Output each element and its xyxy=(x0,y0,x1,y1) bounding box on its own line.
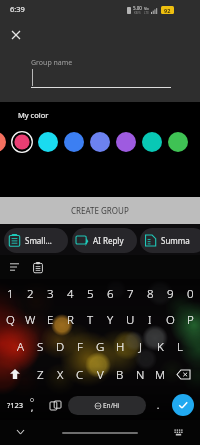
button[interactable]: En/Hi xyxy=(68,396,146,415)
button[interactable]: 7 xyxy=(120,281,140,307)
button[interactable]: F xyxy=(70,334,90,360)
staticText: ?123 xyxy=(7,400,24,410)
button[interactable]: Close xyxy=(5,24,27,46)
button[interactable]: W xyxy=(20,307,40,333)
button[interactable]: Q xyxy=(0,307,20,333)
staticText: 6 xyxy=(107,286,114,302)
button[interactable]: 3 xyxy=(40,281,60,307)
staticText: E xyxy=(47,312,54,328)
staticText: R xyxy=(67,312,74,328)
staticText: 5.00 xyxy=(133,5,142,11)
button[interactable]: Y xyxy=(100,307,120,333)
button[interactable]: Color 2 xyxy=(9,129,35,155)
button[interactable]: Color 6 xyxy=(113,129,139,155)
button[interactable]: Enter xyxy=(172,394,194,416)
button[interactable]: 0 xyxy=(180,281,200,307)
staticText: 4 xyxy=(67,286,74,302)
staticText: 8 xyxy=(147,286,154,302)
button[interactable]: 9 xyxy=(160,281,180,307)
button[interactable]: J xyxy=(130,334,150,360)
staticText: O xyxy=(166,312,175,328)
button[interactable]: D xyxy=(50,334,70,360)
button[interactable]: E xyxy=(40,307,60,333)
button[interactable]: Comma xyxy=(24,393,40,417)
staticText: 3 xyxy=(47,286,54,302)
button[interactable]: Color 7 xyxy=(139,129,165,155)
staticText: U xyxy=(126,312,135,328)
button[interactable]: A xyxy=(10,334,30,360)
staticText: CREATE GROUP xyxy=(71,205,129,216)
button[interactable]: 4 xyxy=(60,281,80,307)
button[interactable]: K xyxy=(150,334,170,360)
staticText: P xyxy=(187,312,194,328)
button[interactable]: 6 xyxy=(100,281,120,307)
staticText: L xyxy=(177,339,183,355)
staticText: H xyxy=(116,339,125,355)
button[interactable]: C xyxy=(70,362,90,388)
staticText: Group name xyxy=(31,58,73,68)
staticText: B xyxy=(116,367,124,383)
button[interactable]: Color 8 xyxy=(165,129,191,155)
staticText: Q xyxy=(6,312,15,328)
button[interactable]: Color 3 xyxy=(35,129,61,155)
button[interactable]: I xyxy=(140,307,160,333)
button[interactable]: Stickers xyxy=(47,393,64,417)
button[interactable]: Color 1 xyxy=(0,129,9,155)
button[interactable]: P xyxy=(180,307,200,333)
button[interactable]: N xyxy=(130,362,150,388)
staticText: W xyxy=(25,312,36,328)
staticText: 6:39 xyxy=(10,4,25,14)
button[interactable]: Hide keyboard xyxy=(10,422,30,442)
staticText: T xyxy=(87,312,94,328)
staticText: V xyxy=(97,367,104,383)
button[interactable]: 2 xyxy=(20,281,40,307)
staticText: 0 xyxy=(187,286,194,302)
staticText: X xyxy=(57,367,64,383)
button[interactable]: M xyxy=(150,362,170,388)
button[interactable]: Clipboard xyxy=(30,259,46,275)
staticText: F xyxy=(77,339,83,355)
button[interactable]: T xyxy=(80,307,100,333)
staticText: Vo xyxy=(144,6,149,11)
staticText: 5 xyxy=(87,286,94,302)
staticText: My color xyxy=(18,110,49,120)
button[interactable]: CREATE GROUP xyxy=(0,197,200,224)
button[interactable]: S xyxy=(30,334,50,360)
staticText: Summa xyxy=(161,235,190,246)
staticText: Small… xyxy=(25,235,52,246)
button[interactable]: G xyxy=(90,334,110,360)
button[interactable]: ?123 xyxy=(2,393,28,417)
button[interactable]: 1 xyxy=(0,281,20,307)
button[interactable]: Color 4 xyxy=(61,129,87,155)
button[interactable]: Backspace xyxy=(171,362,195,386)
staticText: AI Reply xyxy=(93,235,124,246)
button[interactable]: O xyxy=(160,307,180,333)
button[interactable]: Summa xyxy=(140,228,200,253)
staticText: S xyxy=(37,339,44,355)
staticText: 1 xyxy=(7,286,14,302)
button[interactable]: Color 5 xyxy=(87,129,113,155)
button[interactable]: Shift xyxy=(3,362,27,386)
button[interactable]: 8 xyxy=(140,281,160,307)
button[interactable]: L xyxy=(170,334,190,360)
button[interactable]: R xyxy=(60,307,80,333)
button[interactable]: 5 xyxy=(80,281,100,307)
button[interactable]: Small… xyxy=(4,228,68,253)
staticText: A xyxy=(17,339,24,355)
button[interactable]: Period xyxy=(150,393,166,417)
button[interactable]: Z xyxy=(30,362,50,388)
button[interactable]: V xyxy=(90,362,110,388)
staticText: 2 xyxy=(27,286,34,302)
button[interactable]: U xyxy=(120,307,140,333)
staticText: Z xyxy=(37,367,44,383)
button[interactable]: B xyxy=(110,362,130,388)
staticText: I xyxy=(148,312,152,328)
button[interactable]: AI Reply xyxy=(72,228,137,253)
staticText: J xyxy=(139,339,142,355)
button[interactable]: X xyxy=(50,362,70,388)
staticText: K xyxy=(157,339,164,355)
button[interactable]: H xyxy=(110,334,130,360)
button[interactable]: Switch keyboard xyxy=(170,424,187,441)
button[interactable]: Menu xyxy=(6,259,22,275)
staticText: LTE xyxy=(144,11,149,15)
